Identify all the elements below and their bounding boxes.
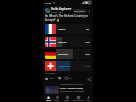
staticText: offizieller bass les posts [60, 83, 84, 86]
button[interactable]: Comments [65, 77, 72, 80]
staticText: You [87, 99, 90, 101]
button[interactable]: Like [45, 77, 54, 80]
staticText: 12:48 [45, 1, 52, 4]
button[interactable]: Share [87, 77, 91, 81]
button[interactable]: Dislike [58, 77, 61, 80]
staticText: Shorts [54, 99, 60, 101]
staticText: Create [64, 99, 70, 101]
staticText: World • Original Songs [60, 87, 84, 90]
staticText: France [58, 28, 66, 31]
staticText: 8% [86, 28, 90, 31]
button[interactable]: Channel avatar [45, 8, 50, 13]
staticText: Hello Explorer • 4.2M views [60, 90, 84, 93]
button[interactable]: You [87, 96, 90, 101]
staticText: 1.2K [49, 77, 54, 80]
button[interactable]: Switzerland [45, 61, 91, 71]
staticText: 54% [85, 65, 90, 68]
button[interactable]: offizieller bass les posts [45, 83, 91, 94]
staticText: 24% [85, 53, 90, 56]
button[interactable]: Create [64, 96, 70, 101]
button[interactable]: Germany [45, 49, 91, 59]
staticText: 36 [69, 77, 72, 80]
staticText: Home [46, 99, 51, 101]
staticText: 14K votes [45, 72, 56, 75]
staticText: Switzerland [58, 65, 71, 68]
staticText: Norway [58, 41, 67, 44]
button[interactable]: More options [87, 9, 91, 13]
staticText: Subscribed [74, 10, 85, 13]
staticText: 2 days ago [51, 11, 63, 14]
staticText: Subscriptions [73, 99, 84, 101]
staticText: So What's The Richest Country in Europe?… [45, 14, 88, 22]
button[interactable]: Shorts [54, 96, 60, 101]
staticText: 14% [85, 41, 90, 44]
button[interactable]: Subscribed [73, 9, 86, 13]
button[interactable]: Home [46, 96, 51, 101]
staticText: Hello Explorer [51, 7, 72, 11]
button[interactable]: Norway [45, 37, 91, 47]
button[interactable]: France [45, 24, 91, 34]
button[interactable]: Subscriptions [73, 96, 84, 101]
staticText: Germany [58, 53, 68, 56]
